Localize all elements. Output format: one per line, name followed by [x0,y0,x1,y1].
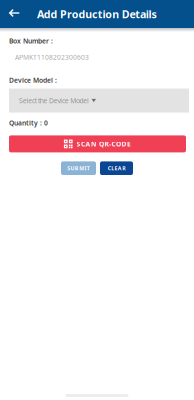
button[interactable]: Select the Device Model [9,89,189,113]
staticText: SCAN QR-CODE [77,139,131,148]
button[interactable]: SUBMIT [61,161,96,175]
staticText: Box Number : [9,36,53,45]
staticText: Add Production Details [37,7,156,21]
button[interactable]: CLEAR [100,161,133,175]
staticText: Quantity : 0 [9,119,48,127]
staticText: APMKT1108202300603 [15,53,89,62]
button[interactable]: Back [0,0,28,28]
staticText: SUBMIT [67,165,90,172]
button[interactable]: SCAN QR-CODE [9,135,186,152]
staticText: CLEAR [108,165,125,172]
staticText: Device Model : [9,76,57,85]
staticText: Select the Device Model [19,96,89,105]
